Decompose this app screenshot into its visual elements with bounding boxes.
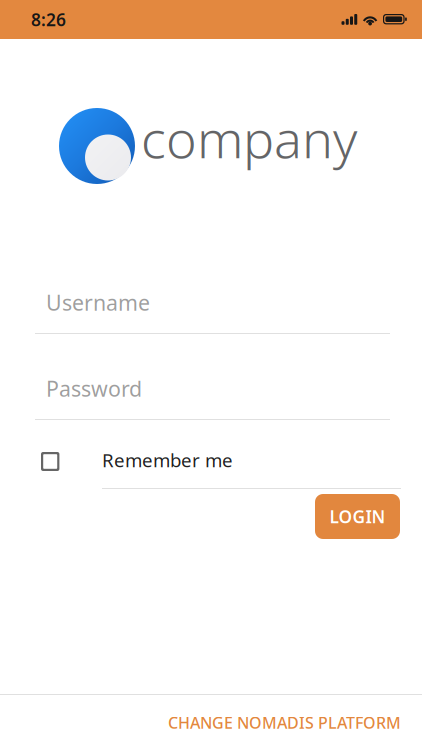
staticText: 8:26 (31, 8, 66, 31)
staticText: LOGIN (329, 505, 385, 528)
button[interactable]: LOGIN (315, 494, 400, 539)
button[interactable]: CHANGE NOMADIS PLATFORM (168, 695, 422, 750)
staticText: Username (46, 288, 150, 317)
button[interactable]: Username (35, 292, 390, 334)
staticText: Password (46, 374, 142, 403)
button[interactable]: Remember me (0, 448, 422, 489)
staticText: CHANGE NOMADIS PLATFORM (168, 712, 401, 733)
staticText: company (141, 103, 357, 173)
staticText: Remember me (102, 448, 233, 472)
button[interactable]: Password (35, 378, 390, 420)
